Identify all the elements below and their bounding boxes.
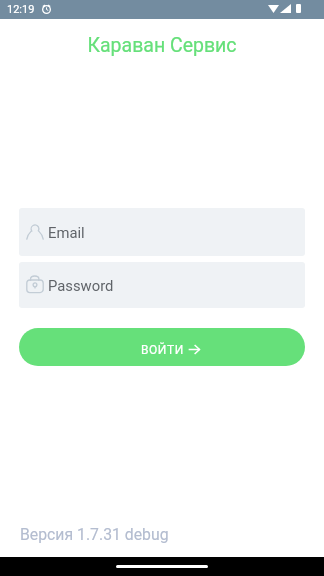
staticText: Password [48, 277, 114, 294]
button[interactable]: Email [19, 208, 305, 256]
staticText: Email [48, 224, 85, 241]
button[interactable]: ВОЙТИ [19, 328, 305, 366]
other: Alarm [42, 5, 51, 14]
staticText: 12:19 [7, 3, 35, 16]
button[interactable]: Password [19, 262, 305, 308]
staticText: ВОЙТИ [141, 343, 184, 357]
staticText: Караван Сервис [0, 34, 324, 57]
staticText: Версия 1.7.31 debug [20, 525, 169, 544]
